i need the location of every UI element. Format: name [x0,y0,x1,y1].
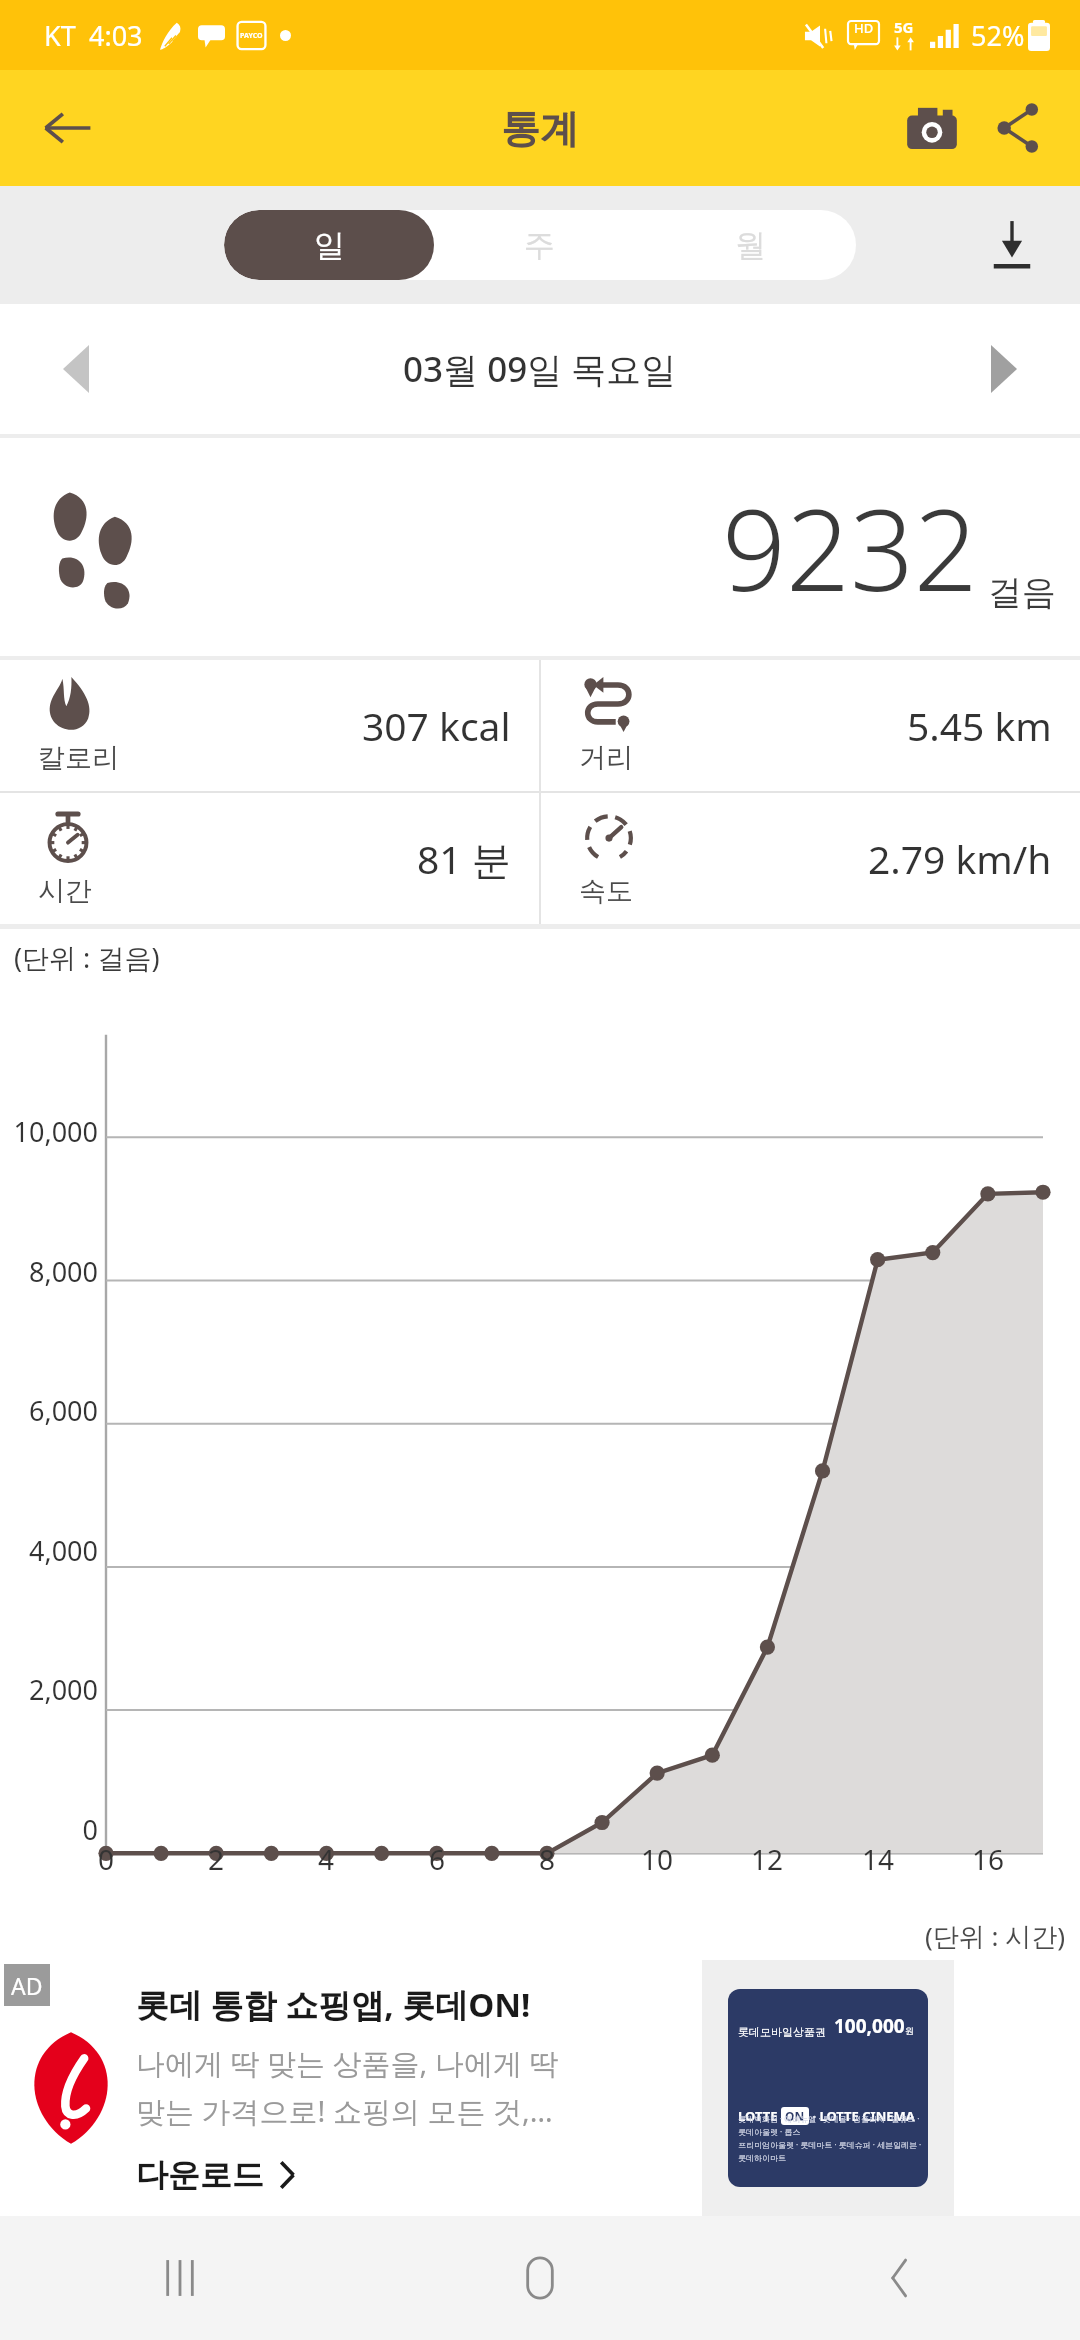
staticText: 100,000 [834,2013,905,2039]
button[interactable]: Download [970,203,1054,287]
staticText: 2.79 km/h [868,832,1052,885]
staticText: 8,000 [6,1253,98,1290]
staticText: 5.45 km [907,699,1052,752]
button[interactable]: 거리 [541,660,1080,791]
button[interactable]: Camera [888,84,976,172]
staticText: 307 kcal [362,699,511,752]
staticText: 6,000 [6,1392,98,1429]
staticText: 칼로리 [38,741,119,775]
button[interactable]: 월 [645,210,856,280]
button[interactable]: Back [720,2216,1080,2340]
staticText: 롯데 통합 쇼핑앱, 롯데ON! [136,1982,531,2027]
button[interactable]: Home [360,2216,720,2340]
staticText: 4:03 [89,17,143,54]
staticText: 16 [968,1840,1008,1878]
staticText: 주 [524,226,555,265]
staticText: 10 [637,1840,677,1878]
staticText: 52% [971,17,1025,54]
staticText: 롯데모바일상품권 [738,2025,826,2039]
staticText: 8 [527,1840,567,1878]
button[interactable]: 9232 [0,438,1080,656]
staticText: 월 [735,226,766,265]
staticText: HD [854,19,874,37]
staticText: 4,000 [6,1532,98,1569]
staticText: 6 [417,1840,457,1878]
staticText: 5G [894,17,914,37]
staticText: 03월 09일 목요일 [403,345,677,393]
staticText: 시간 [38,874,92,908]
staticText: 0 [86,1840,126,1878]
button[interactable]: Next day [964,329,1044,409]
staticText: 4 [306,1840,346,1878]
staticText: 0 [6,1811,98,1848]
staticText: 거리 [579,741,633,775]
button[interactable]: Back [22,83,112,173]
staticText: 통계 [501,104,579,153]
staticText: 다운로드 [136,2155,264,2195]
staticText: 일 [314,226,345,265]
button[interactable]: Previous day [36,329,116,409]
button[interactable]: 시간 [0,793,539,924]
staticText: 2,000 [6,1671,98,1708]
staticText: KT [44,17,76,54]
staticText: 14 [858,1840,898,1878]
staticText: (단위 : 걸음) [14,939,160,976]
staticText: 9232 [722,471,978,624]
button[interactable]: Recents [0,2216,360,2340]
staticText: 12 [747,1840,787,1878]
staticText: 속도 [579,874,633,908]
staticText: 원 [905,2025,914,2036]
staticText: 걸음 [988,571,1056,614]
button[interactable]: Share [976,86,1060,170]
staticText: PAYCO [240,31,263,41]
staticText: LOTTE [738,2107,781,2125]
button[interactable]: 롯데 통합 쇼핑앱, 롯데ON! [136,1982,656,2195]
staticText: 2 [196,1840,236,1878]
button[interactable]: 칼로리 [0,660,539,791]
staticText: 81 분 [417,832,511,885]
button[interactable]: 속도 [541,793,1080,924]
staticText: · LOTTE CINEMA [809,2107,915,2125]
staticText: (단위 : 시간) [925,1918,1066,1954]
staticText: 롯데백화점 · 에비뉴엘 · 롯데몰 · 영플라자 · 엘큐브 · 롯데아울렛 … [738,2113,928,2163]
staticText: 나에게 딱 맞는 상품을, 나에게 딱 맞는 가격으로! 쇼핑의 모든 것,… [136,2043,559,2131]
staticText: AD [11,1970,43,2001]
staticText: 10,000 [6,1113,98,1150]
button[interactable]: 일 [224,210,434,280]
staticText: ON [785,2108,805,2124]
button[interactable]: 주 [434,210,645,280]
